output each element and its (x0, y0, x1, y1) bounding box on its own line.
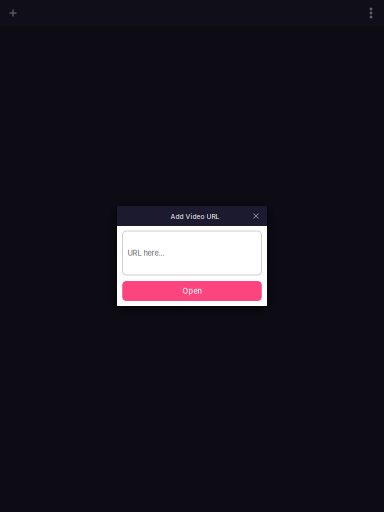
staticText: URL here... (127, 249, 164, 257)
button[interactable]: More options (358, 0, 384, 26)
button[interactable]: Open (122, 281, 262, 301)
button[interactable]: Close (246, 206, 266, 226)
staticText: Add Video URL (170, 212, 219, 221)
staticText: Open (182, 287, 201, 295)
button[interactable]: Add (0, 0, 26, 26)
